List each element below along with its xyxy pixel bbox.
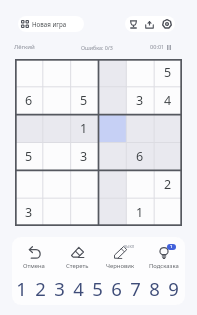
staticText: 6 — [111, 276, 122, 301]
staticText: 1 — [80, 120, 88, 137]
button[interactable] — [126, 170, 154, 198]
button[interactable]: 4 — [154, 86, 182, 114]
button[interactable] — [42, 198, 70, 226]
staticText: 7 — [130, 276, 141, 301]
button[interactable]: 5 — [70, 86, 98, 114]
staticText: 2 — [35, 276, 46, 301]
button[interactable] — [15, 170, 42, 198]
staticText: ВЫКЛ — [124, 244, 135, 249]
button[interactable] — [42, 86, 70, 114]
staticText: 5 — [25, 148, 33, 165]
staticText: 3 — [25, 204, 33, 221]
staticText: 3 — [136, 92, 144, 109]
staticText: 5 — [92, 276, 103, 301]
button[interactable]: 8 — [145, 273, 164, 303]
staticText: Черновик — [106, 262, 135, 270]
button[interactable]: Отмена — [12, 237, 56, 275]
button[interactable]: Statistics — [125, 16, 141, 32]
button[interactable] — [70, 59, 98, 86]
button[interactable]: 9 — [164, 273, 183, 303]
button[interactable] — [154, 114, 182, 142]
staticText: Стереть — [66, 262, 89, 270]
button[interactable]: 5 — [154, 59, 182, 86]
staticText: 5 — [164, 64, 172, 81]
staticText: 1 — [136, 204, 144, 221]
button[interactable]: 6 — [15, 86, 42, 114]
button[interactable] — [42, 59, 70, 86]
staticText: 2 — [164, 176, 172, 193]
button[interactable]: 1 — [126, 198, 154, 226]
button[interactable]: 3 — [126, 86, 154, 114]
button[interactable] — [70, 198, 98, 226]
button[interactable]: Стереть — [56, 237, 99, 275]
button[interactable]: 5 — [88, 273, 107, 303]
button[interactable] — [15, 59, 42, 86]
button[interactable] — [98, 86, 126, 114]
button[interactable] — [126, 114, 154, 142]
staticText: Лёгкий — [14, 43, 35, 51]
button[interactable] — [98, 59, 126, 86]
button[interactable]: ВЫКЛ — [99, 237, 142, 275]
staticText: 3 — [80, 148, 88, 165]
staticText: Ошибка: 0/3 — [81, 44, 113, 51]
button[interactable] — [98, 114, 126, 142]
button[interactable]: 2 — [154, 170, 182, 198]
button[interactable]: 1 — [70, 114, 98, 142]
staticText: 4 — [164, 92, 172, 109]
button[interactable]: 2 — [31, 273, 50, 303]
staticText: 00:01 — [150, 43, 165, 51]
button[interactable]: 00:01 — [150, 43, 171, 51]
button[interactable] — [126, 59, 154, 86]
button[interactable]: 4 — [69, 273, 88, 303]
button[interactable]: 5 — [15, 142, 42, 170]
staticText: 9 — [168, 276, 179, 301]
staticText: 4 — [73, 276, 84, 301]
button[interactable] — [42, 114, 70, 142]
button[interactable] — [42, 170, 70, 198]
staticText: 6 — [136, 148, 144, 165]
staticText: 1 — [16, 276, 27, 301]
button[interactable]: 3 — [50, 273, 69, 303]
staticText: 3 — [54, 276, 65, 301]
button[interactable] — [98, 170, 126, 198]
button[interactable]: 3 — [70, 142, 98, 170]
button[interactable] — [154, 198, 182, 226]
button[interactable]: 6 — [107, 273, 126, 303]
staticText: 6 — [25, 92, 33, 109]
button[interactable] — [98, 142, 126, 170]
button[interactable]: 6 — [126, 142, 154, 170]
button[interactable]: 3 — [15, 198, 42, 226]
button[interactable]: 1 — [142, 237, 185, 275]
button[interactable] — [98, 198, 126, 226]
staticText: Подсказка — [149, 262, 179, 270]
button[interactable]: 1 — [12, 273, 31, 303]
button[interactable] — [42, 142, 70, 170]
button[interactable]: Settings — [158, 16, 175, 32]
button[interactable] — [15, 114, 42, 142]
staticText: 5 — [80, 92, 88, 109]
staticText: Новая игра — [32, 20, 67, 28]
button[interactable] — [70, 170, 98, 198]
staticText: 1 — [170, 244, 173, 250]
staticText: Отмена — [23, 262, 45, 270]
button[interactable] — [154, 142, 182, 170]
button[interactable]: Share — [141, 16, 158, 32]
button[interactable]: Новая игра — [18, 16, 84, 32]
staticText: 8 — [149, 276, 160, 301]
button[interactable]: 7 — [126, 273, 145, 303]
